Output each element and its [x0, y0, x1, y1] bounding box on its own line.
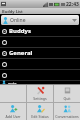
staticText: Buddy List: [2, 9, 23, 14]
other: App notification: [1, 1, 6, 7]
button[interactable]: ente: [0, 81, 80, 84]
button[interactable]: [0, 37, 80, 48]
button[interactable]: [0, 70, 80, 81]
staticText: Edit Status: [31, 114, 49, 119]
button[interactable]: Conversations: [54, 103, 80, 120]
staticText: Buddys: [9, 27, 31, 35]
staticText: Quit: [63, 96, 71, 101]
button[interactable]: Quit: [54, 85, 80, 102]
staticText: ente: [8, 81, 17, 84]
staticText: Conversations: [55, 114, 79, 119]
button[interactable]: Edit Status: [27, 103, 53, 120]
button[interactable]: General: [0, 48, 80, 59]
staticText: Add User: [5, 114, 21, 119]
button[interactable]: Add User: [0, 103, 26, 120]
button[interactable]: Buddys: [0, 26, 80, 37]
button[interactable]: Settings: [27, 85, 53, 102]
staticText: 22:43: [66, 1, 79, 8]
staticText: General: [9, 49, 33, 57]
staticText: Settings: [33, 96, 47, 101]
button[interactable]: Online: [1, 15, 79, 25]
button[interactable]: [0, 59, 80, 70]
staticText: Online: [10, 17, 26, 24]
